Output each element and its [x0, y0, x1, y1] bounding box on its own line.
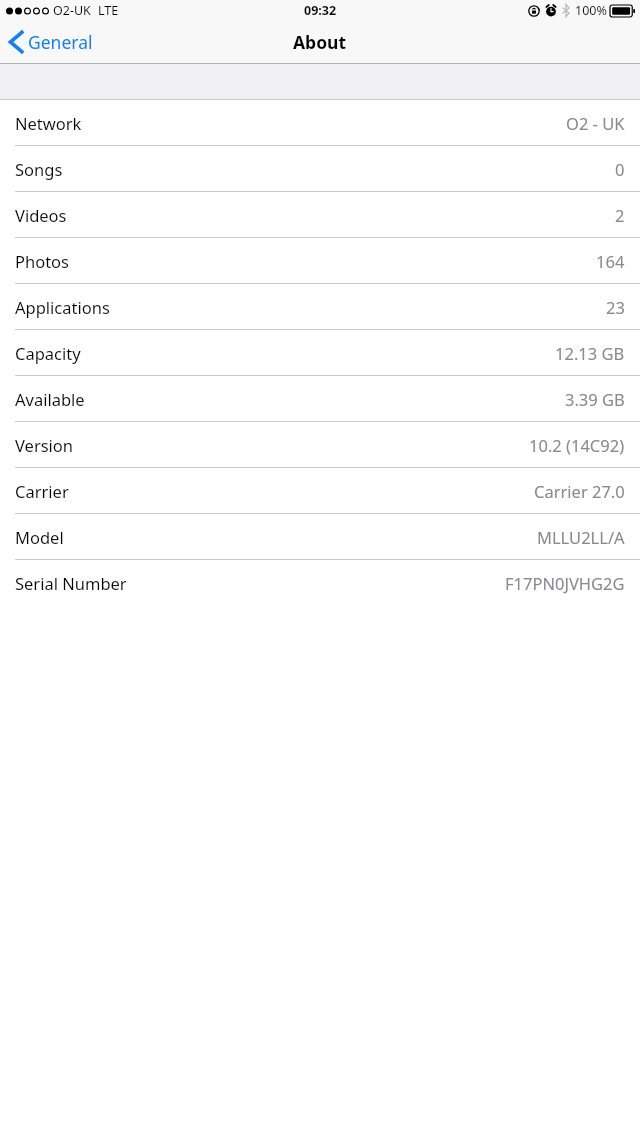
staticText: Network — [15, 112, 82, 134]
staticText: 164 — [596, 250, 625, 272]
staticText: Available — [15, 388, 85, 410]
staticText: 09:32 — [304, 2, 337, 19]
staticText: 0 — [615, 158, 625, 180]
staticText: About — [293, 30, 347, 54]
staticText: MLLU2LL/A — [537, 526, 625, 548]
staticText: 12.13 GB — [555, 342, 625, 364]
staticText: O2-UK — [53, 2, 91, 19]
other: Back — [9, 31, 23, 53]
staticText: Applications — [15, 296, 110, 318]
staticText: Videos — [15, 204, 67, 226]
button[interactable]: Carrier — [0, 468, 640, 513]
staticText: General — [28, 30, 93, 54]
staticText: Photos — [15, 250, 70, 272]
staticText: 3.39 GB — [565, 388, 625, 410]
staticText: 2 — [615, 204, 625, 226]
staticText: Capacity — [15, 342, 81, 364]
staticText: Carrier — [15, 480, 69, 502]
button[interactable]: Applications — [0, 284, 640, 329]
button[interactable]: Back — [0, 20, 288, 64]
button[interactable]: Model — [0, 514, 640, 559]
button[interactable]: Available — [0, 376, 640, 421]
button[interactable]: Capacity — [0, 330, 640, 375]
staticText: Songs — [15, 158, 63, 180]
button[interactable]: Network — [0, 100, 640, 145]
button[interactable]: Songs — [0, 146, 640, 191]
staticText: 23 — [606, 296, 625, 318]
button[interactable]: Serial Number — [0, 560, 640, 605]
staticText: O2 - UK — [566, 112, 625, 134]
staticText: 10.2 (14C92) — [529, 434, 625, 456]
button[interactable]: Photos — [0, 238, 640, 283]
staticText: Serial Number — [15, 572, 127, 594]
staticText: 100% — [575, 2, 607, 19]
staticText: LTE — [98, 2, 119, 19]
staticText: Carrier 27.0 — [534, 480, 625, 502]
button[interactable]: Videos — [0, 192, 640, 237]
staticText: Version — [15, 434, 74, 456]
staticText: Model — [15, 526, 64, 548]
button[interactable]: Version — [0, 422, 640, 467]
staticText: F17PN0JVHG2G — [505, 572, 625, 594]
